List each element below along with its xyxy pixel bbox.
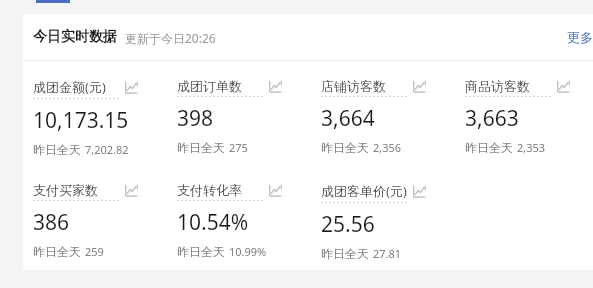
button[interactable]: 商品访客数 bbox=[465, 78, 593, 155]
staticText: 支付转化率 bbox=[177, 182, 242, 198]
staticText: 25.56 bbox=[321, 210, 375, 239]
staticText: 3,663 bbox=[465, 104, 519, 133]
staticText: 3,664 bbox=[321, 104, 375, 133]
staticText: 10,173.15 bbox=[33, 106, 129, 135]
staticText: 昨日全天 bbox=[177, 244, 225, 259]
staticText: 2,356 bbox=[373, 140, 402, 155]
staticText: 成团客单价(元) bbox=[321, 182, 407, 200]
staticText: 7,202.82 bbox=[85, 142, 129, 157]
staticText: 27.81 bbox=[373, 246, 402, 261]
staticText: 支付买家数 bbox=[33, 182, 98, 198]
staticText: 店铺访客数 bbox=[321, 78, 386, 94]
button[interactable]: 店铺访客数 bbox=[321, 78, 465, 155]
staticText: 成团订单数 bbox=[177, 78, 242, 94]
button[interactable]: 更多 bbox=[567, 29, 593, 45]
staticText: 昨日全天 bbox=[321, 140, 369, 155]
button[interactable]: 支付转化率 bbox=[177, 182, 321, 259]
staticText: 更多 bbox=[567, 29, 593, 45]
staticText: 259 bbox=[85, 244, 104, 259]
staticText: 2,353 bbox=[517, 140, 546, 155]
button[interactable]: 成团客单价(元) bbox=[321, 182, 465, 261]
staticText: 昨日全天 bbox=[177, 140, 225, 155]
staticText: 成团金额(元) bbox=[33, 78, 106, 96]
staticText: 昨日全天 bbox=[321, 246, 369, 261]
staticText: 275 bbox=[229, 140, 248, 155]
staticText: 昨日全天 bbox=[33, 244, 81, 259]
staticText: 398 bbox=[177, 104, 214, 133]
staticText: 今日实时数据 bbox=[33, 28, 117, 46]
staticText: 昨日全天 bbox=[465, 140, 513, 155]
staticText: 昨日全天 bbox=[33, 142, 81, 157]
staticText: 386 bbox=[33, 208, 70, 237]
staticText: 商品访客数 bbox=[465, 78, 530, 94]
staticText: 10.99% bbox=[229, 244, 267, 259]
button[interactable]: 成团订单数 bbox=[177, 78, 321, 155]
staticText: 10.54% bbox=[177, 208, 249, 237]
button[interactable]: 成团金额(元) bbox=[33, 78, 177, 157]
button[interactable]: 支付买家数 bbox=[33, 182, 177, 259]
staticText: 更新于今日20:26 bbox=[125, 30, 216, 46]
